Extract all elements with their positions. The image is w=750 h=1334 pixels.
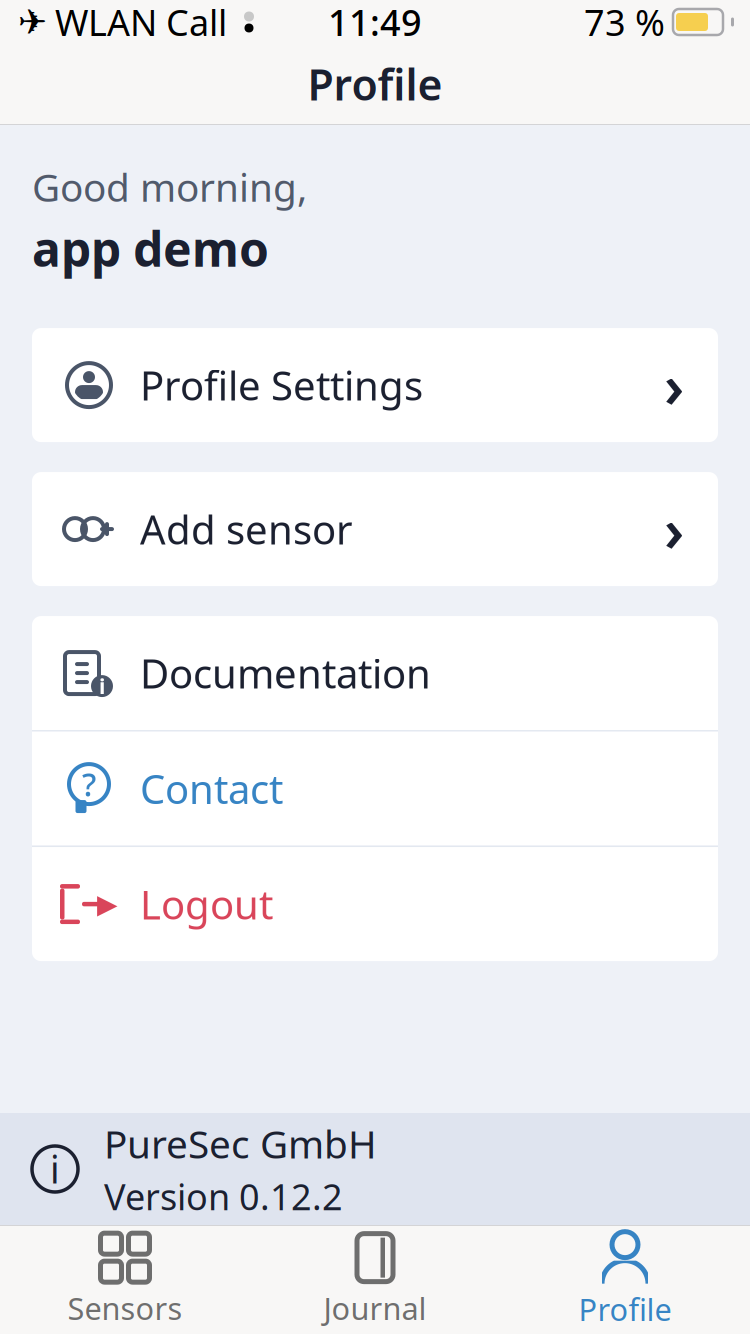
staticText: Sensors <box>67 1288 182 1328</box>
staticText: Journal <box>323 1288 426 1328</box>
button[interactable]: ? <box>32 732 718 846</box>
staticText: ✈ <box>18 2 47 42</box>
staticText: › <box>664 490 684 568</box>
staticText: › <box>664 346 684 424</box>
button[interactable]: Profile Settings <box>32 328 718 442</box>
staticText: Logout <box>140 877 273 931</box>
button[interactable]: Profile <box>500 1226 750 1334</box>
staticText: Add sensor <box>140 502 353 556</box>
staticText: Version 0.12.2 <box>104 1172 343 1220</box>
staticText: i <box>99 672 105 700</box>
button[interactable]: Sensors <box>0 1226 250 1334</box>
staticText: app demo <box>32 216 269 280</box>
staticText: WLAN Call <box>55 0 227 46</box>
button[interactable]: ▶ <box>32 847 718 961</box>
staticText: Good morning, <box>32 161 307 212</box>
staticText: ▶ <box>97 889 118 919</box>
button[interactable]: Add sensor <box>32 472 718 586</box>
staticText: 73 % <box>584 0 665 46</box>
button[interactable]: Journal <box>250 1226 500 1334</box>
staticText: Documentation <box>140 646 431 700</box>
button[interactable]: i <box>32 616 718 730</box>
staticText: PureSec GmbH <box>104 1118 377 1169</box>
staticText: i <box>50 1144 60 1194</box>
staticText: Profile <box>307 56 442 112</box>
staticText: 11:49 <box>328 0 422 46</box>
staticText: Contact <box>140 762 283 815</box>
staticText: Profile Settings <box>140 358 423 412</box>
staticText: ? <box>82 763 96 805</box>
staticText: Profile <box>578 1289 671 1329</box>
